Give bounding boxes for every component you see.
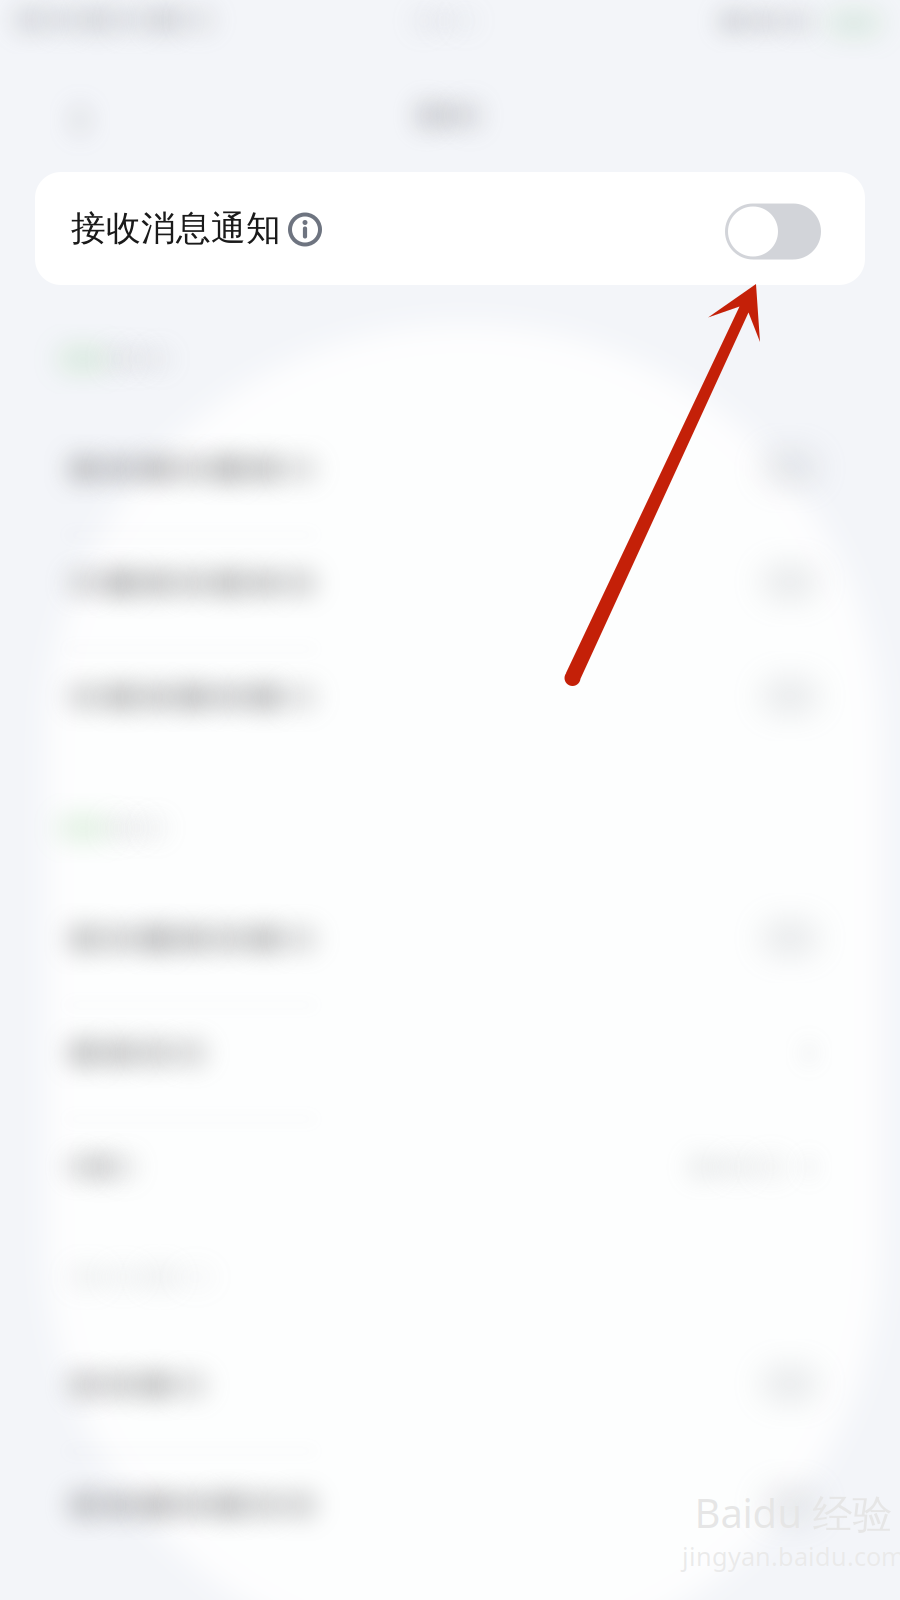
button[interactable]: 设置项	[46, 1464, 876, 1578]
button[interactable]: 设置项	[46, 1344, 876, 1458]
button[interactable]: 接收消息通知	[35, 172, 865, 285]
button[interactable]: 设置项	[46, 898, 876, 1012]
button[interactable]: 设置项	[46, 542, 876, 656]
staticText: Baidu 经验	[694, 1486, 892, 1539]
staticText: jingyan.baidu.com	[682, 1539, 900, 1573]
button[interactable]: 设置项	[46, 656, 876, 770]
staticText: 接收消息通知	[71, 207, 281, 250]
button[interactable]: 设置项	[46, 428, 876, 542]
